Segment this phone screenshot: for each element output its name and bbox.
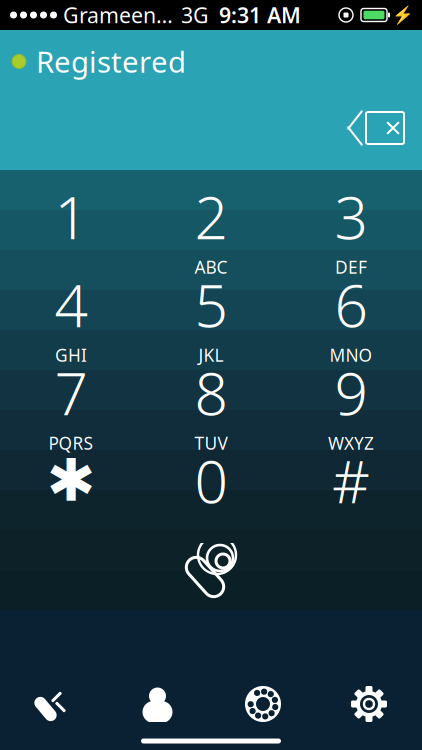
button[interactable]: Call	[166, 538, 256, 604]
button[interactable]: ✱	[1, 448, 141, 536]
staticText: #	[332, 441, 370, 519]
staticText: GHI	[55, 343, 87, 366]
button[interactable]: Delete	[346, 108, 408, 148]
staticText: PQRS	[48, 431, 93, 454]
staticText: 7	[54, 353, 87, 431]
staticText: 9:31 AM	[219, 1, 301, 29]
staticText: 2	[194, 177, 227, 255]
staticText: 3	[334, 177, 367, 255]
button[interactable]: Keypad	[210, 676, 316, 732]
button[interactable]: 8	[141, 360, 281, 448]
button[interactable]: 2	[141, 184, 281, 272]
button[interactable]: 6	[281, 272, 421, 360]
staticText: 5	[194, 265, 227, 343]
button[interactable]: Settings	[316, 676, 422, 732]
button[interactable]: 5	[141, 272, 281, 360]
staticText: ⚡	[392, 5, 414, 25]
button[interactable]: 7	[1, 360, 141, 448]
button[interactable]: Recents	[0, 676, 105, 732]
staticText: Registered	[36, 42, 186, 81]
staticText: 6	[334, 265, 367, 343]
button[interactable]: 4	[1, 272, 141, 360]
staticText: DEF	[335, 255, 367, 278]
staticText: ✱	[46, 447, 95, 514]
button[interactable]: 3	[281, 184, 421, 272]
button[interactable]: 1	[1, 184, 141, 272]
button[interactable]: Contacts	[105, 676, 210, 732]
button[interactable]: 9	[281, 360, 421, 448]
staticText: 9	[334, 353, 367, 431]
staticText: 1	[54, 177, 87, 255]
staticText: WXYZ	[328, 431, 374, 454]
button[interactable]: 0	[141, 448, 281, 536]
staticText: MNO	[329, 343, 372, 366]
staticText: JKL	[198, 343, 223, 366]
button[interactable]: #	[281, 448, 421, 536]
staticText: 0	[194, 441, 227, 519]
staticText: 3G	[181, 1, 209, 29]
staticText: 8	[194, 353, 227, 431]
staticText: Grameen…	[63, 1, 173, 29]
staticText: 4	[54, 265, 87, 343]
staticText: TUV	[194, 431, 227, 454]
staticText: ABC	[194, 255, 227, 278]
